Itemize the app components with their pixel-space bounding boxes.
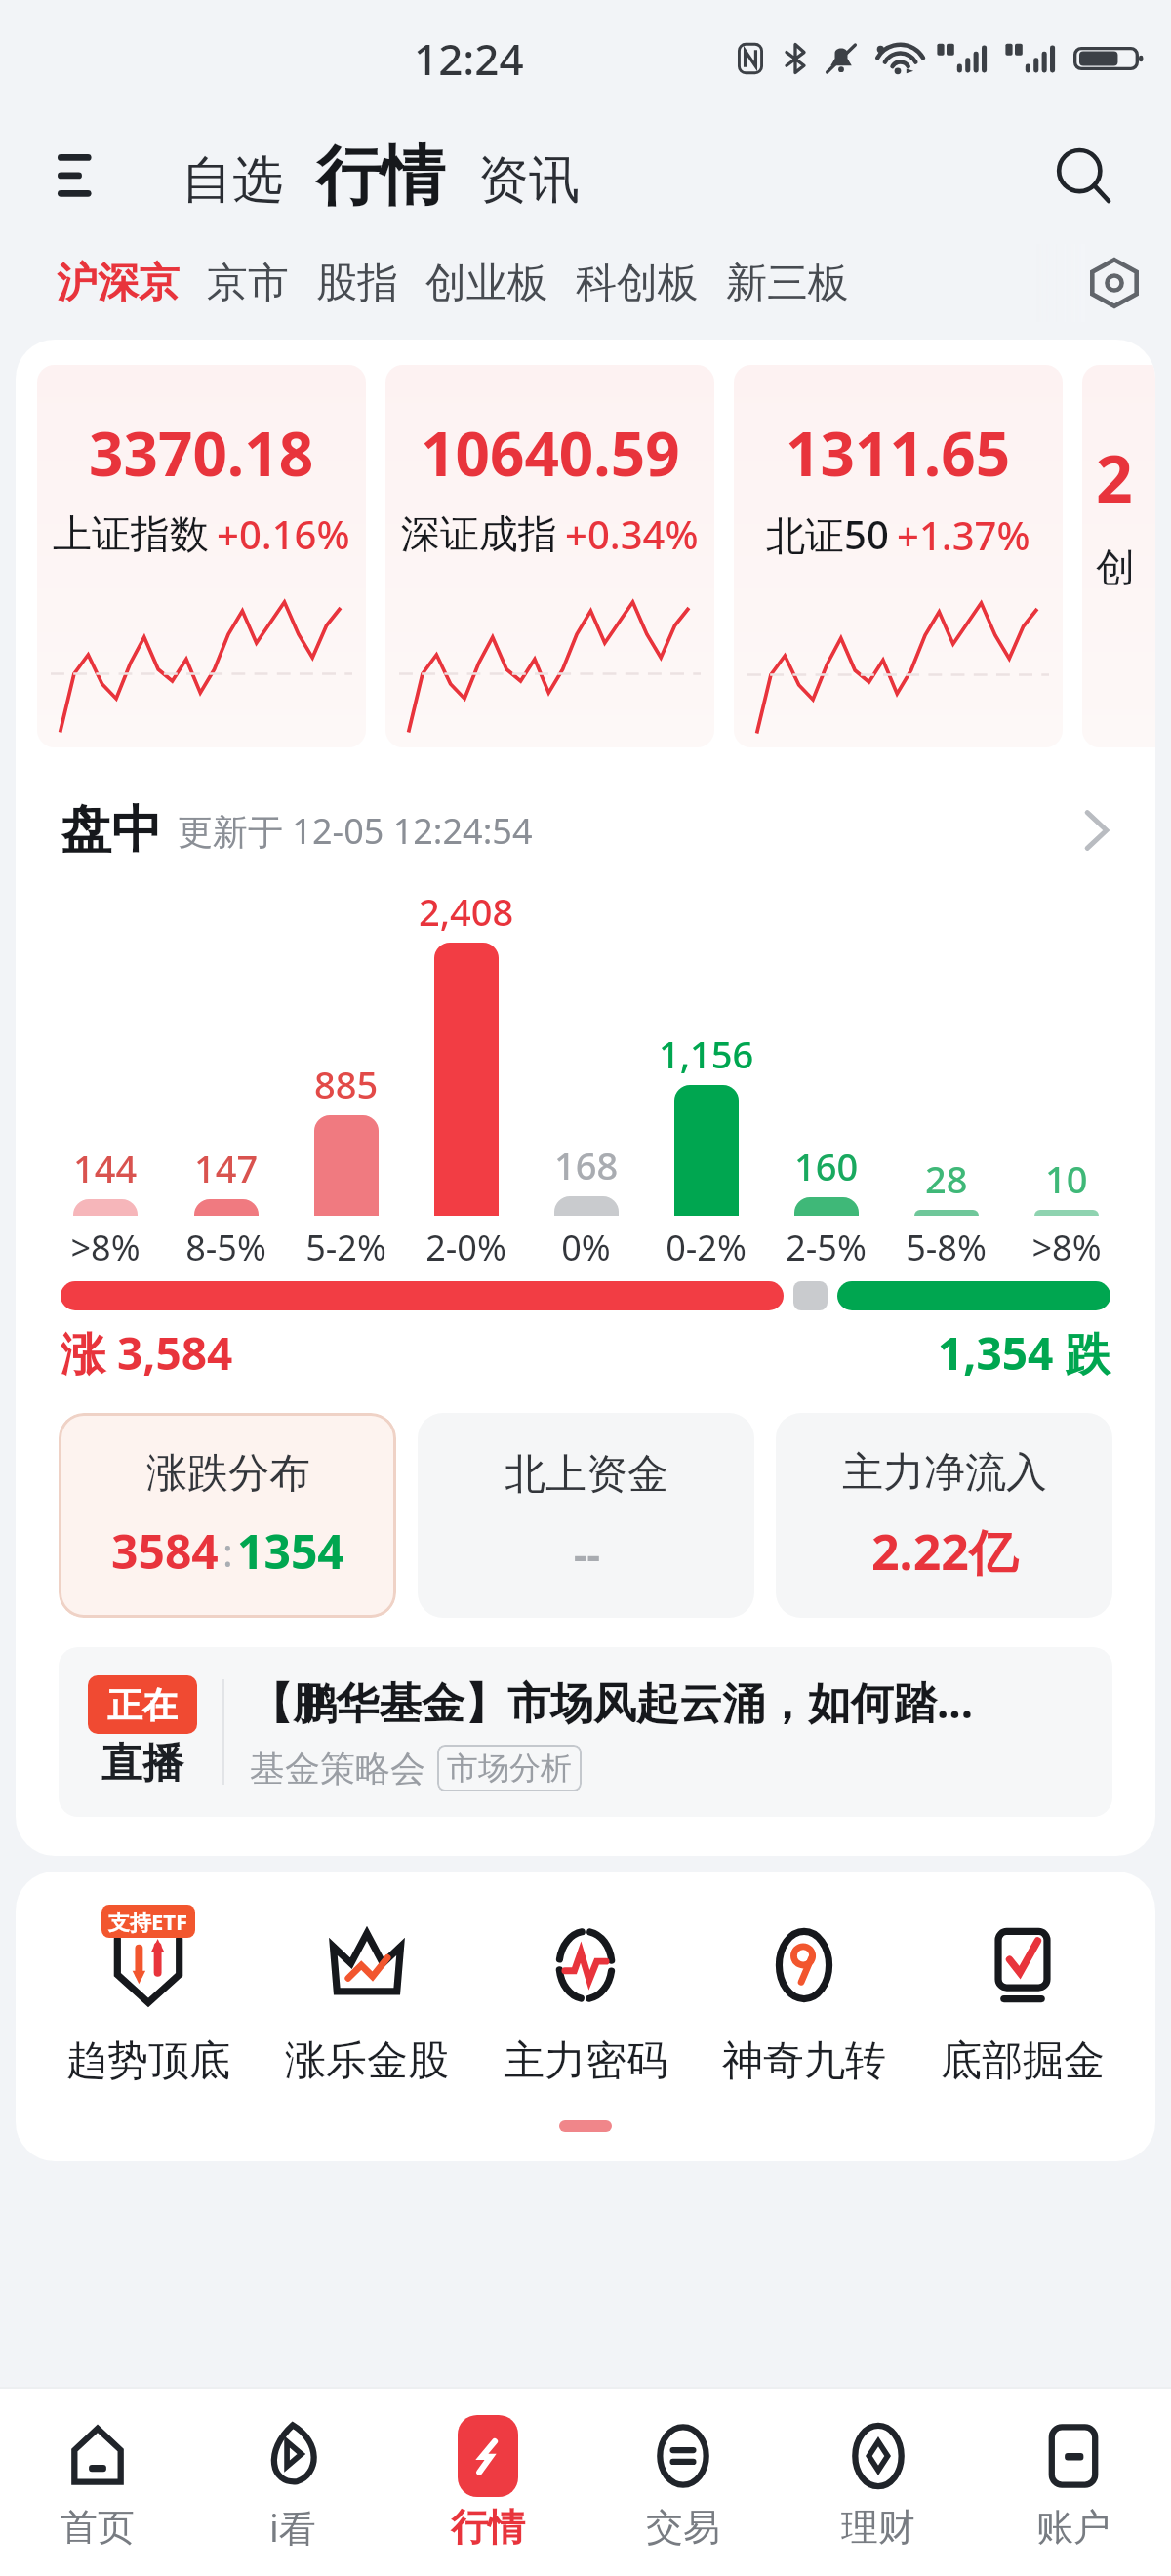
button[interactable]: Search [1042, 135, 1124, 217]
staticText: 2-0% [425, 1224, 506, 1271]
button[interactable]: 北上资金 [418, 1413, 754, 1618]
button[interactable]: 885 [286, 884, 406, 1271]
button[interactable]: 账户 [976, 2389, 1171, 2576]
staticText: 涨 3,584 [61, 1322, 233, 1384]
button[interactable]: 科创板 [562, 248, 712, 319]
staticText: 底部掘金 [941, 2035, 1105, 2087]
staticText: 8-5% [185, 1224, 266, 1271]
staticText: 正在 [107, 1683, 178, 1727]
staticText: 12:24 [414, 29, 524, 88]
button[interactable]: Menu [47, 141, 115, 210]
staticText: 1311.65 [786, 412, 1011, 494]
staticText: 创 [1096, 543, 1135, 591]
button[interactable]: 自选 [174, 142, 291, 219]
staticText: 主力密码 [504, 2035, 667, 2087]
button[interactable]: i看 [195, 2389, 390, 2576]
staticText: 北证50 [766, 507, 889, 561]
staticText: 0% [561, 1224, 611, 1271]
staticText: 基金策略会 [250, 1747, 425, 1791]
staticText: 理财 [841, 2504, 915, 2551]
button[interactable]: 新三板 [712, 248, 863, 319]
staticText: : [222, 1525, 233, 1578]
staticText: 行情 [316, 136, 445, 217]
staticText: 168 [554, 1140, 619, 1190]
staticText: 深证成指 [401, 509, 557, 558]
button[interactable]: 主力净流入 [776, 1413, 1112, 1618]
staticText: 5-8% [906, 1224, 987, 1271]
staticText: 沪深京 [57, 258, 180, 309]
staticText: 2,408 [419, 886, 514, 937]
button[interactable]: 京市 [193, 248, 303, 319]
button[interactable]: 盘中 [16, 798, 1155, 863]
staticText: 2.22亿 [871, 1518, 1018, 1585]
button[interactable]: 正在 [59, 1647, 1112, 1817]
staticText: 2 [1096, 433, 1133, 521]
button[interactable]: 沪深京 [43, 248, 193, 319]
button[interactable]: 行情 [308, 134, 453, 219]
staticText: 上证指数 [53, 509, 209, 558]
button[interactable]: 股指 [303, 248, 412, 319]
staticText: i看 [269, 2502, 316, 2553]
staticText: 2-5% [786, 1224, 867, 1271]
staticText: 资讯 [478, 148, 580, 213]
staticText: +0.34% [565, 507, 699, 560]
button[interactable]: Settings [1079, 248, 1150, 318]
staticText: 神奇九转 [722, 2035, 886, 2087]
button[interactable]: 涨跌分布 [59, 1413, 396, 1618]
button[interactable]: 理财 [781, 2389, 976, 2576]
button[interactable]: 10 [1006, 884, 1126, 1271]
button[interactable]: 首页 [0, 2389, 195, 2576]
staticText: 1,354 跌 [938, 1322, 1110, 1384]
button[interactable]: 资讯 [470, 142, 587, 219]
staticText: 京市 [207, 258, 289, 309]
staticText: 创业板 [425, 258, 548, 309]
staticText: 行情 [451, 2504, 525, 2551]
staticText: 市场分析 [447, 1749, 572, 1788]
staticText: >8% [1031, 1224, 1102, 1271]
button[interactable]: 支持ETF [39, 1907, 258, 2087]
button[interactable]: 147 [166, 884, 286, 1271]
button[interactable]: 10640.59 [385, 365, 714, 747]
staticText: >8% [70, 1224, 141, 1271]
staticText: 科创板 [576, 258, 699, 309]
button[interactable]: 底部掘金 [913, 1907, 1132, 2087]
button[interactable]: 28 [886, 884, 1006, 1271]
staticText: 3584 [111, 1519, 219, 1583]
staticText: 涨跌分布 [146, 1448, 310, 1500]
staticText: 0-2% [666, 1224, 747, 1271]
staticText: 首页 [61, 2504, 135, 2551]
button[interactable]: 2 [1082, 365, 1155, 747]
button[interactable]: 主力密码 [476, 1907, 695, 2087]
button[interactable]: 3370.18 [37, 365, 366, 747]
button[interactable]: 1,156 [646, 884, 766, 1271]
staticText: 支持ETF [108, 1907, 188, 1936]
button[interactable]: 1311.65 [734, 365, 1063, 747]
staticText: 账户 [1036, 2504, 1110, 2551]
button[interactable]: 144 [45, 884, 166, 1271]
staticText: +0.16% [217, 507, 350, 560]
button[interactable]: 160 [766, 884, 886, 1271]
staticText: 160 [794, 1141, 859, 1191]
button[interactable]: 神奇九转 [695, 1907, 913, 2087]
staticText: 3370.18 [89, 412, 314, 494]
button[interactable]: 168 [526, 884, 646, 1271]
button[interactable]: 行情 [390, 2389, 585, 2576]
staticText: 股指 [316, 258, 398, 309]
staticText: 涨乐金股 [285, 2035, 449, 2087]
staticText: 直播 [101, 1738, 183, 1790]
staticText: 10640.59 [421, 412, 680, 494]
staticText: 更新于 12-05 12:24:54 [178, 807, 533, 855]
staticText: 885 [314, 1059, 379, 1109]
button[interactable]: 交易 [585, 2389, 781, 2576]
staticText: 主力净流入 [842, 1447, 1047, 1499]
staticText: 北上资金 [505, 1449, 668, 1501]
staticText: 交易 [646, 2504, 720, 2551]
staticText: 盘中 [61, 798, 162, 863]
staticText: 自选 [182, 148, 283, 213]
button[interactable]: 创业板 [412, 248, 562, 319]
staticText: 144 [73, 1143, 138, 1193]
staticText: 28 [925, 1153, 968, 1204]
staticText: 5-2% [305, 1224, 386, 1271]
button[interactable]: 2,408 [406, 884, 526, 1271]
button[interactable]: 涨乐金股 [258, 1907, 476, 2087]
